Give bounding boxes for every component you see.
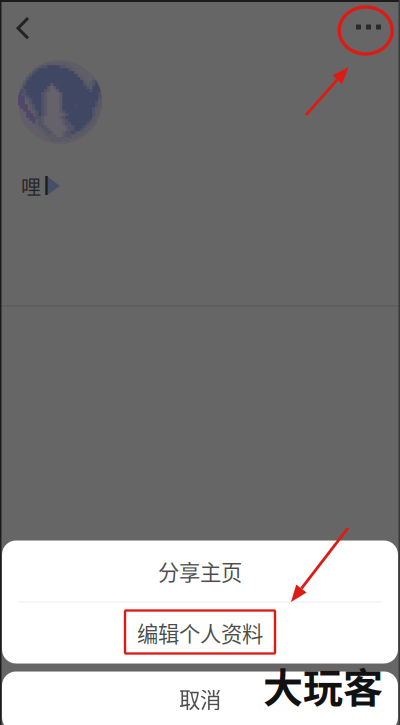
button[interactable]: Back bbox=[0, 2, 46, 50]
staticText: 分享主页 bbox=[158, 556, 242, 587]
staticText: 编辑个人资料 bbox=[137, 617, 263, 648]
staticText: 哩 bbox=[21, 171, 41, 200]
staticText: 取消 bbox=[179, 683, 221, 714]
staticText: 大玩客 bbox=[263, 656, 383, 714]
button[interactable]: 取消 bbox=[2, 671, 398, 725]
button[interactable]: More options bbox=[342, 4, 394, 50]
button[interactable]: 分享主页 bbox=[2, 540, 398, 602]
button[interactable]: 编辑个人资料 bbox=[2, 602, 398, 663]
